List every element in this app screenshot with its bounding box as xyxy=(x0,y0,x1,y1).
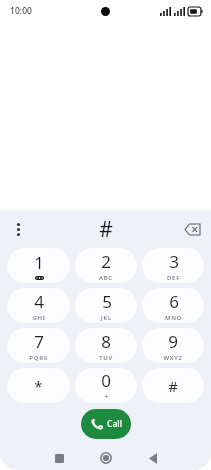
button[interactable]: 0 xyxy=(75,368,137,403)
staticText: 9 xyxy=(168,330,178,353)
staticText: # xyxy=(99,215,113,244)
button[interactable]: * xyxy=(7,368,70,403)
staticText: Call xyxy=(107,418,122,430)
staticText: # xyxy=(168,376,178,396)
staticText: GHI xyxy=(32,314,46,322)
staticText: 5 xyxy=(102,290,112,313)
staticText: + xyxy=(104,392,109,402)
staticText: 7 xyxy=(34,330,44,353)
button[interactable]: 3 xyxy=(142,248,204,283)
staticText: TUV xyxy=(99,354,113,362)
button[interactable]: Recent apps xyxy=(44,446,74,470)
staticText: * xyxy=(34,376,43,396)
button[interactable]: 7 xyxy=(7,328,70,363)
staticText: 3 xyxy=(169,250,179,273)
staticText: 1 xyxy=(34,251,44,274)
staticText: 2 xyxy=(101,250,111,273)
button[interactable]: 4 xyxy=(7,288,70,323)
staticText: ABC xyxy=(99,274,113,282)
button[interactable]: 8 xyxy=(75,328,137,363)
staticText: 6 xyxy=(169,290,179,313)
button[interactable]: More options xyxy=(6,217,30,241)
button[interactable]: 6 xyxy=(142,288,204,323)
staticText: 10:00 xyxy=(10,5,32,17)
button[interactable]: 1 xyxy=(7,248,70,283)
button[interactable]: 9 xyxy=(142,328,204,363)
button[interactable]: 2 xyxy=(75,248,137,283)
button[interactable]: Backspace xyxy=(179,216,205,242)
staticText: PQRS xyxy=(29,354,48,362)
staticText: WXYZ xyxy=(163,354,183,362)
staticText: DEF xyxy=(167,274,180,282)
button[interactable]: # xyxy=(142,368,204,403)
staticText: 0 xyxy=(101,369,111,392)
staticText: MNO xyxy=(165,314,182,322)
staticText: 4 xyxy=(34,290,44,313)
staticText: 8 xyxy=(101,330,111,353)
button[interactable]: 5 xyxy=(75,288,137,323)
button[interactable]: Call xyxy=(81,409,131,439)
button[interactable]: Home xyxy=(91,446,121,470)
staticText: JKL xyxy=(101,314,112,322)
button[interactable]: Back xyxy=(138,446,168,470)
